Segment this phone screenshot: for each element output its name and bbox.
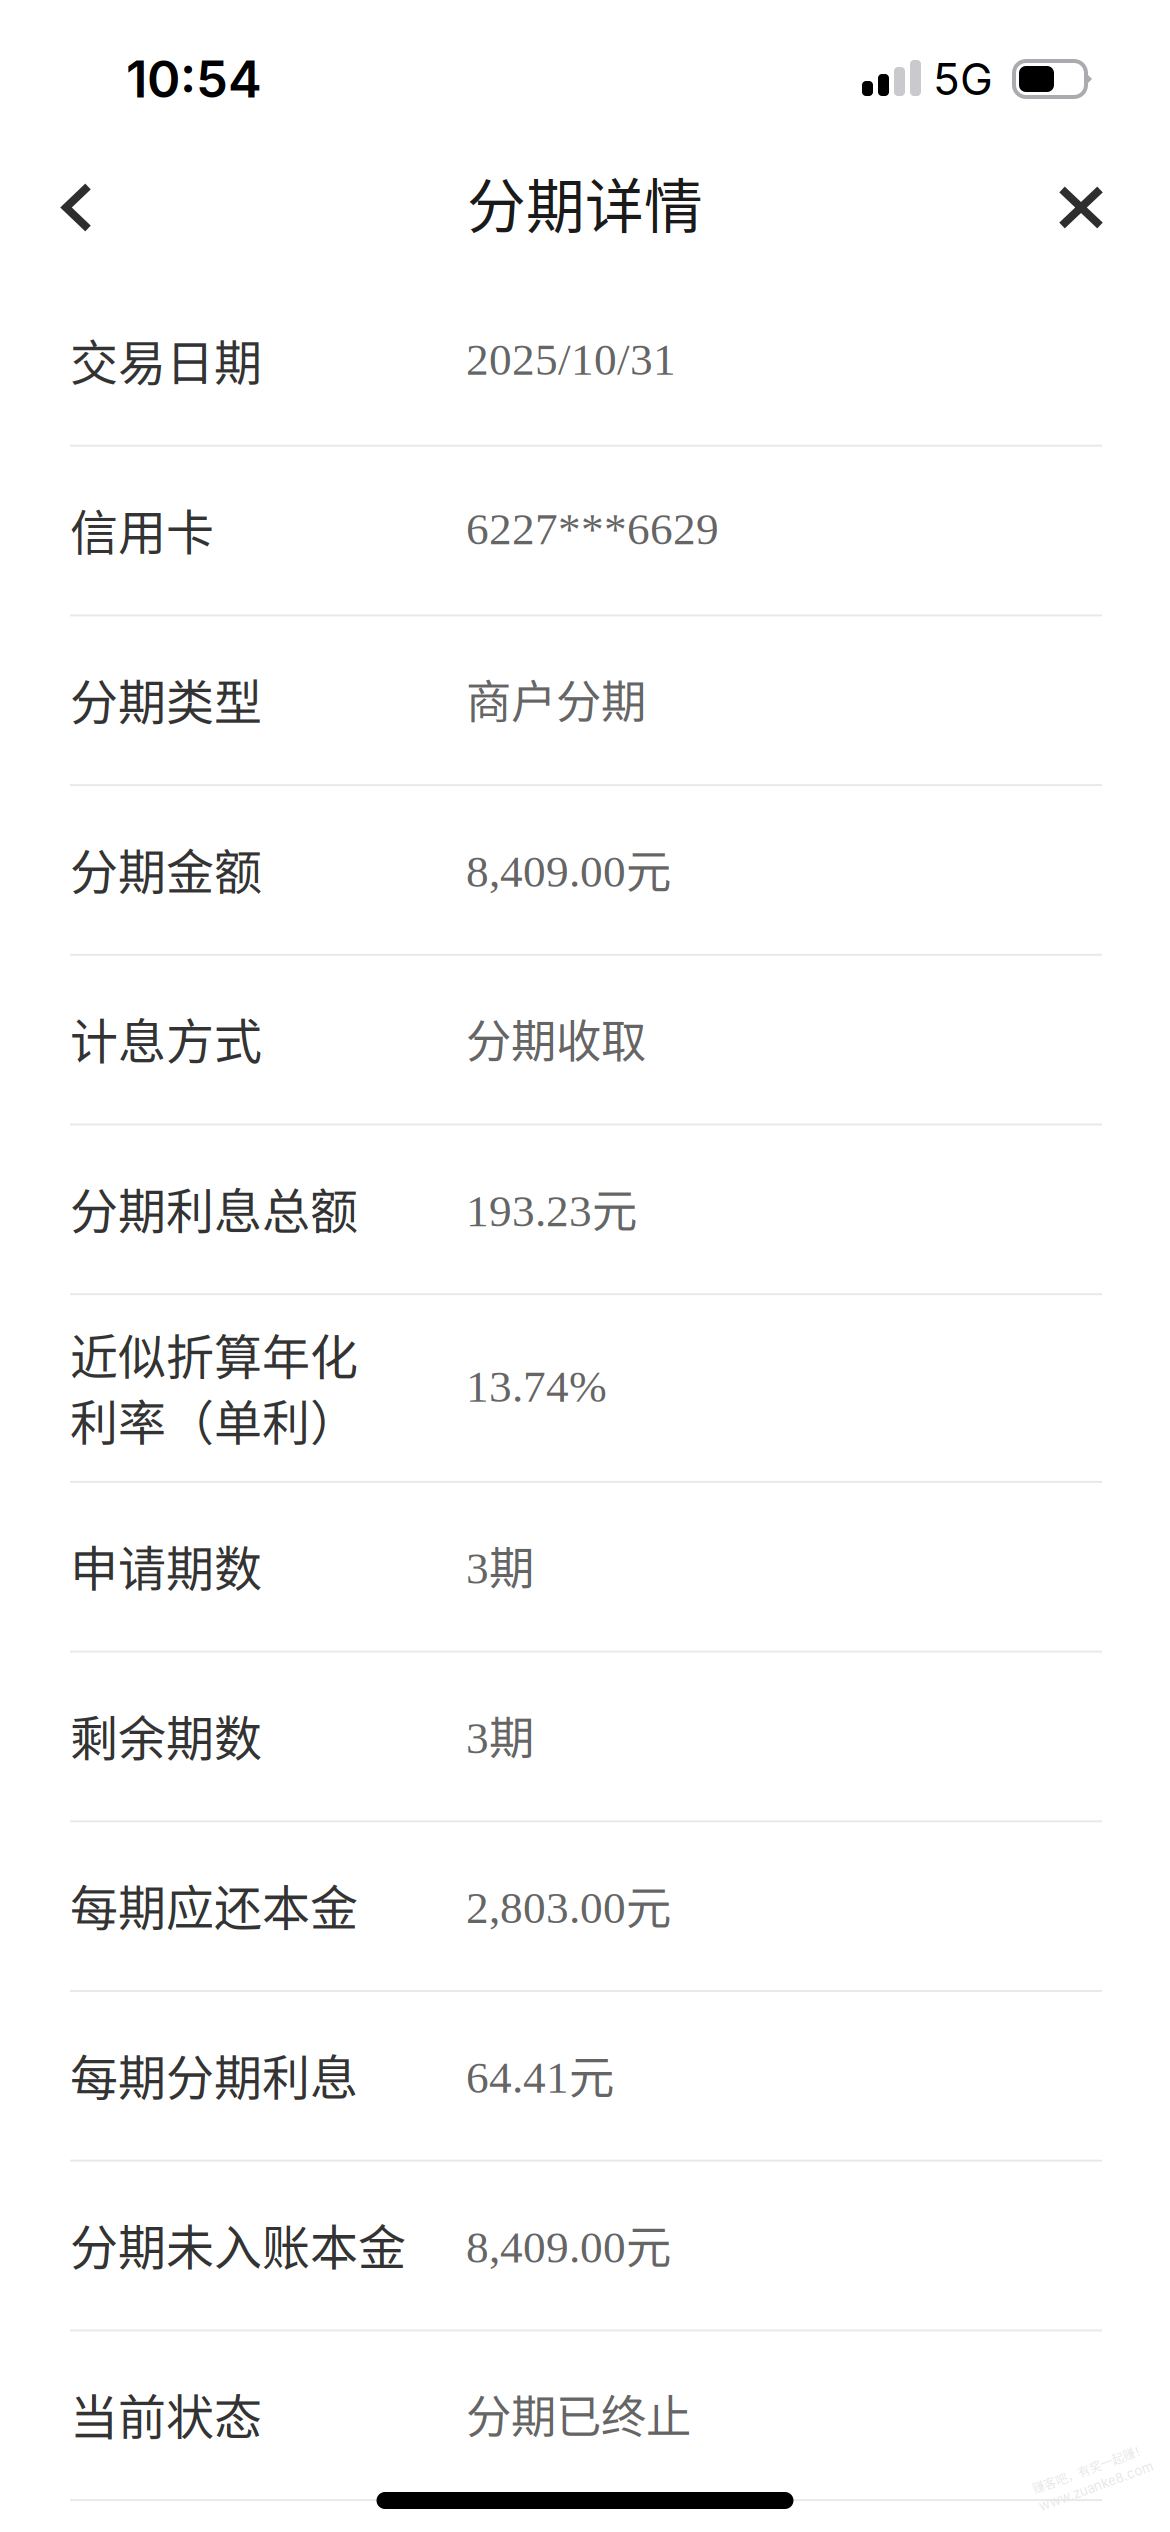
staticText: 赚客吧，有奖一起赚！ <box>1032 2459 1152 2477</box>
staticText: 计息方式 <box>70 1003 262 1073</box>
staticText: 6227***6629 <box>466 504 719 554</box>
staticText: 3期 <box>466 1532 534 1598</box>
staticText: 每期应还本金 <box>70 1870 358 1939</box>
staticText: 信用卡 <box>70 494 214 564</box>
staticText: 分期详情 <box>467 160 703 245</box>
staticText: 13.74% <box>466 1361 607 1412</box>
button[interactable]: Back <box>15 138 139 277</box>
staticText: 64.41元 <box>466 2041 614 2107</box>
button[interactable]: Close <box>1019 138 1143 277</box>
staticText: 申请期数 <box>70 1530 262 1600</box>
staticText: 2,803.00元 <box>466 1872 671 1937</box>
staticText: 10:54 <box>126 48 262 110</box>
staticText: 193.23元 <box>466 1175 637 1241</box>
staticText: 近似折算年化 利率（单利） <box>70 1321 358 1452</box>
staticText: 商户分期 <box>466 666 646 731</box>
staticText: 当前状态 <box>70 2379 262 2448</box>
staticText: 5G <box>933 52 993 106</box>
staticText: 剩余期数 <box>70 1700 262 1770</box>
staticText: 3期 <box>466 1702 534 1768</box>
staticText: 2025/10/31 <box>466 334 676 384</box>
staticText: 每期分期利息 <box>70 2040 358 2109</box>
staticText: 8,409.00元 <box>466 836 671 901</box>
staticText: 分期金额 <box>70 834 262 903</box>
staticText: 分期利息总额 <box>70 1173 358 1243</box>
staticText: 分期收取 <box>466 1005 646 1071</box>
staticText: 分期类型 <box>70 664 262 733</box>
staticText: 8,409.00元 <box>466 2211 671 2277</box>
staticText: www.zuanke8.com <box>1032 2479 1153 2495</box>
staticText: 交易日期 <box>70 325 262 394</box>
staticText: 分期已终止 <box>466 2381 691 2446</box>
staticText: 分期未入账本金 <box>70 2209 406 2279</box>
